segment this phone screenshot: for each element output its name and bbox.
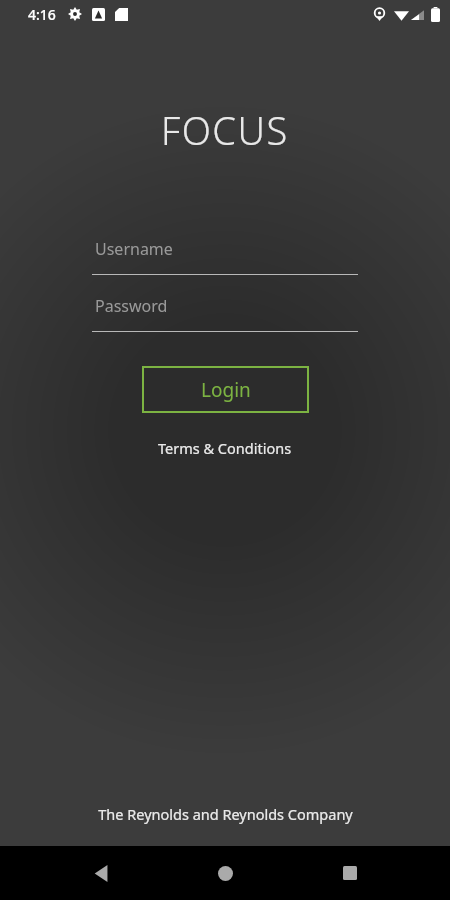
staticText: The Reynolds and Reynolds Company xyxy=(98,804,353,824)
button[interactable]: Back xyxy=(77,849,125,897)
button[interactable]: Username xyxy=(92,229,358,275)
button[interactable]: Recent apps xyxy=(326,849,374,897)
staticText: Password xyxy=(95,295,168,317)
button[interactable]: Home xyxy=(201,849,249,897)
staticText: Terms & Conditions xyxy=(158,438,292,458)
staticText: Login xyxy=(201,377,251,403)
staticText: 4:16 xyxy=(28,5,56,24)
staticText: Username xyxy=(95,238,173,260)
button[interactable]: Terms & Conditions xyxy=(150,434,300,462)
staticText: FOCUS xyxy=(161,104,289,156)
button[interactable]: Password xyxy=(92,286,358,332)
button[interactable]: Login xyxy=(142,366,309,413)
